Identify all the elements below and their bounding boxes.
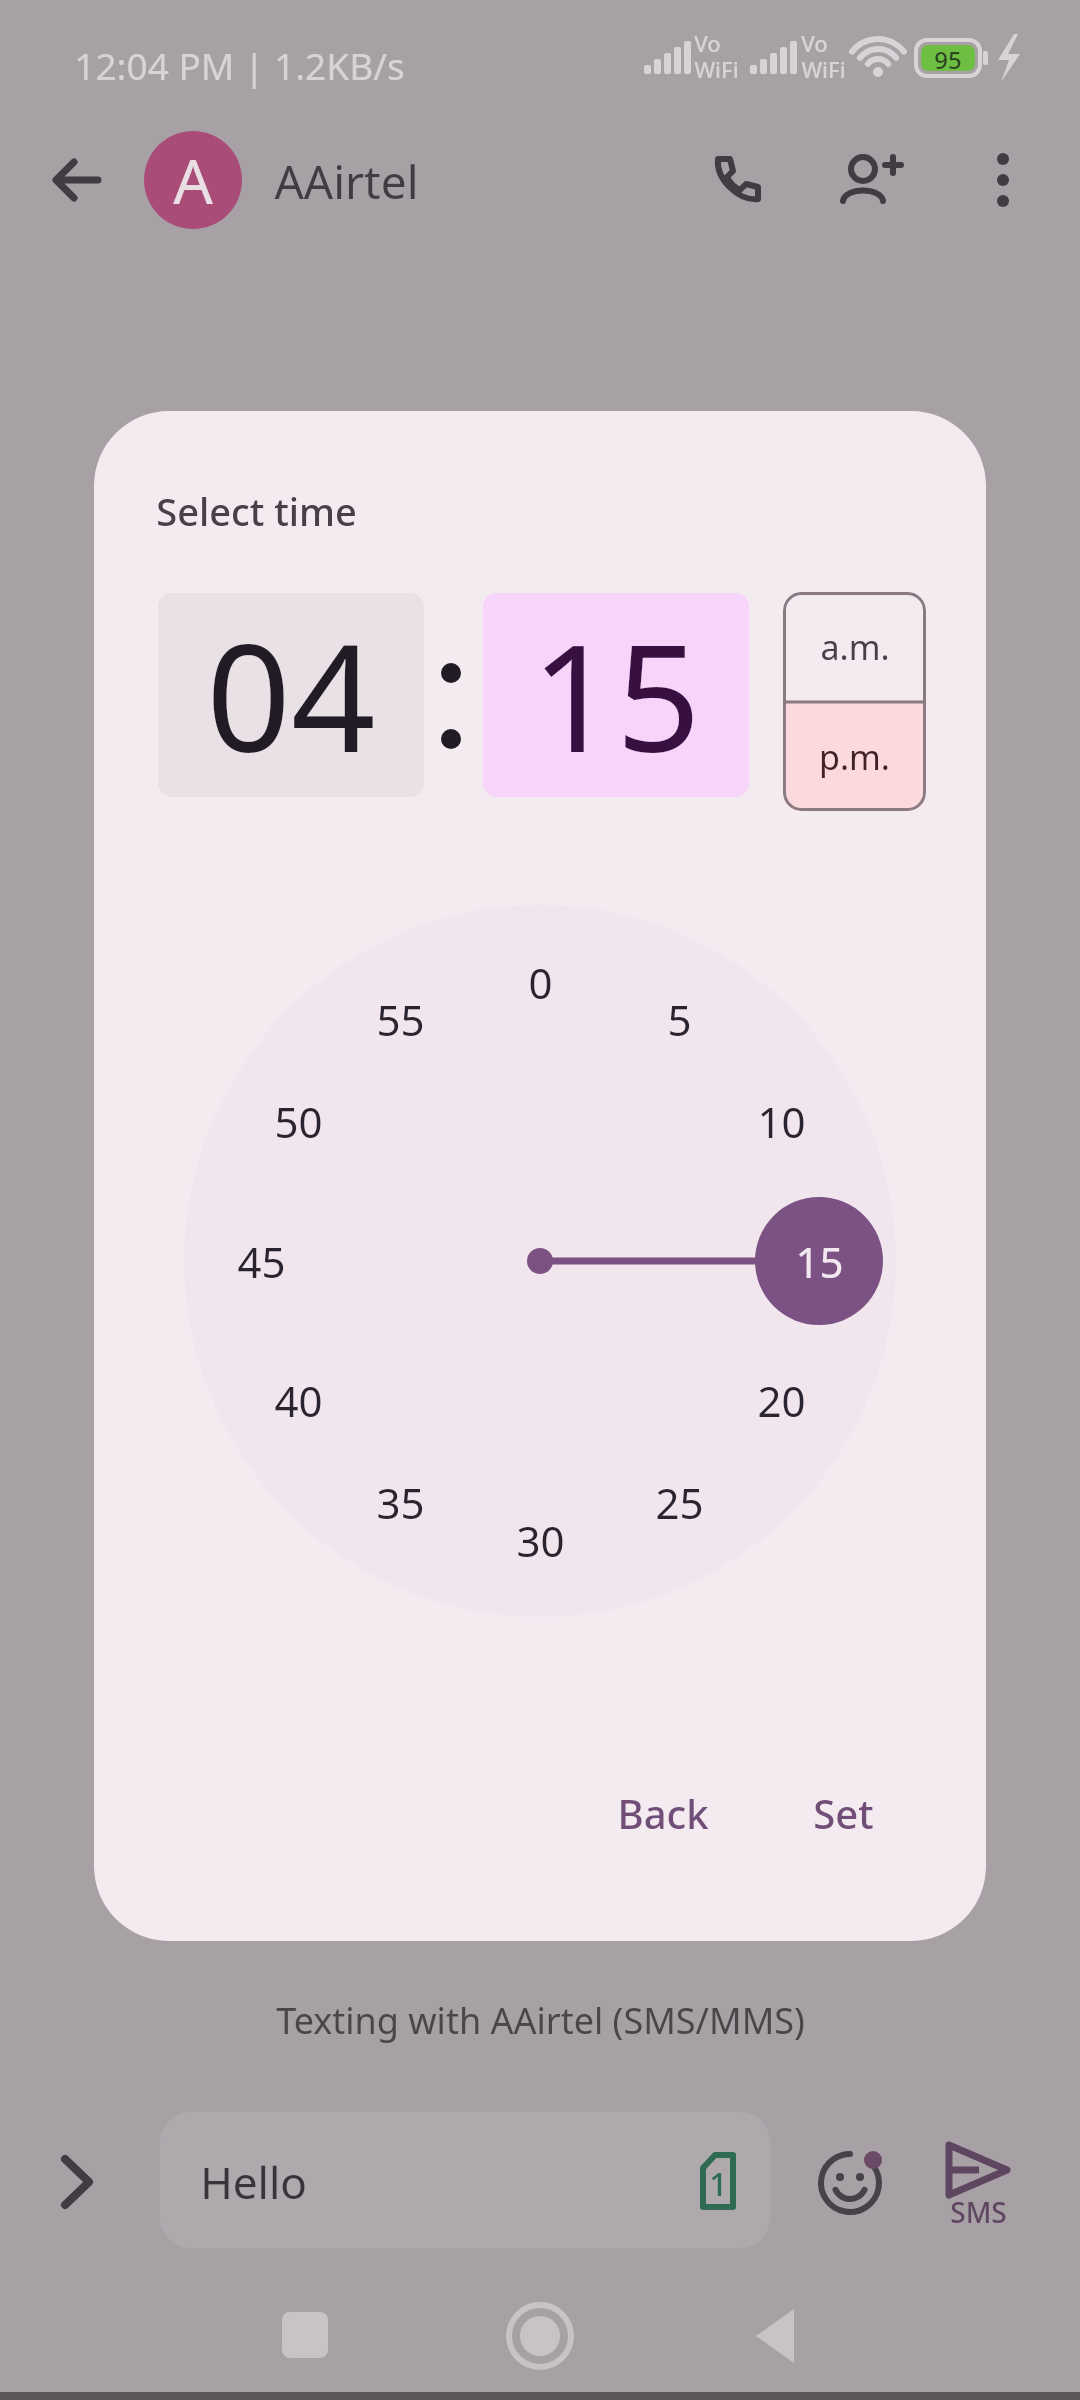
button[interactable] [810,2143,890,2223]
button[interactable]: 40 [243,1365,353,1435]
button[interactable]: 35 [345,1467,455,1537]
button[interactable]: 10 [726,1086,836,1156]
button[interactable] [160,2112,770,2248]
staticText: AAirtel [274,150,419,213]
staticText: Hello [200,2152,307,2212]
button[interactable] [973,135,1033,225]
staticText: WiFi [801,54,846,84]
button[interactable]: Back [583,1773,743,1853]
staticText: 5 [667,991,692,1048]
staticText: SMS [950,2193,1007,2231]
staticText: 45 [237,1233,286,1290]
staticText: 1 [709,2162,728,2206]
button[interactable]: 45 [206,1226,316,1296]
button[interactable]: p.m. [783,702,926,811]
staticText: A [173,138,213,222]
staticText: Texting with AAirtel (SMS/MMS) [276,1996,805,2045]
staticText: 95 [934,43,962,73]
button[interactable] [260,2290,350,2380]
staticText: 15 [795,1233,844,1290]
staticText: 50 [274,1093,323,1150]
staticText: 20 [757,1372,806,1429]
staticText: 04 [206,594,376,796]
staticText: 15 [531,594,701,796]
button[interactable] [933,2131,1023,2241]
staticText: 12:04 PM | 1.2KB/s [74,40,405,90]
staticText: 40 [274,1372,323,1429]
button[interactable] [692,135,782,225]
staticText: Vo [694,28,721,58]
staticText: 25 [655,1474,704,1531]
button[interactable]: a.m. [783,592,926,702]
staticText: Vo [801,28,828,58]
staticText: 0 [528,954,553,1011]
button[interactable]: Set [783,1773,903,1853]
button[interactable]: 20 [726,1365,836,1435]
button[interactable] [495,2291,585,2381]
staticText: 10 [757,1093,806,1150]
staticText: p.m. [819,734,890,780]
button[interactable]: 55 [345,984,455,1054]
button[interactable]: 15 [483,593,749,797]
staticText: Select time [156,485,357,537]
button[interactable]: 50 [243,1086,353,1156]
button[interactable]: AAirtel [274,150,419,213]
button[interactable]: 25 [624,1467,734,1537]
button[interactable]: 0 [485,947,595,1017]
button[interactable]: 15 [764,1226,874,1296]
button[interactable] [683,2146,753,2216]
staticText: Back [617,1786,709,1840]
staticText: Set [813,1786,874,1840]
button[interactable]: 30 [485,1505,595,1575]
button[interactable]: 5 [624,984,734,1054]
button[interactable] [732,2291,822,2381]
button[interactable] [823,135,913,225]
staticText: 55 [376,991,425,1048]
button[interactable] [32,135,122,225]
staticText: 30 [516,1512,565,1569]
button[interactable]: 04 [158,593,424,797]
staticText: a.m. [820,624,890,670]
staticText: WiFi [694,54,739,84]
staticText: 35 [376,1474,425,1531]
button[interactable] [41,2147,111,2217]
button[interactable]: A [144,131,242,229]
